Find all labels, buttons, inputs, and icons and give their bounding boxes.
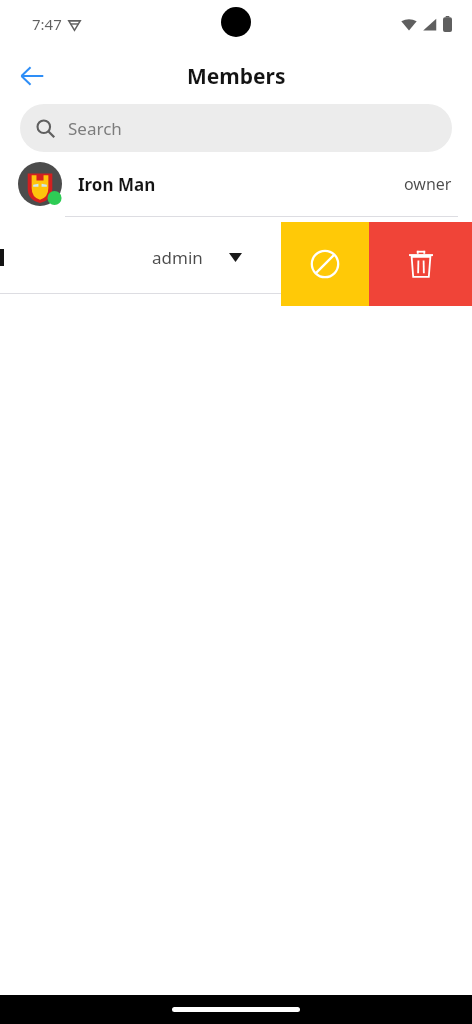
button[interactable]: admin: [152, 246, 242, 269]
button[interactable]: Search: [20, 104, 452, 152]
staticText: 7:47: [32, 14, 62, 34]
button[interactable]: Block member: [281, 222, 369, 306]
staticText: Iron Man: [78, 173, 156, 196]
button[interactable]: Delete member: [369, 222, 472, 306]
button[interactable]: Iron Man: [0, 152, 472, 216]
button[interactable]: Back: [8, 52, 56, 100]
staticText: Search: [68, 117, 122, 140]
staticText: admin: [152, 246, 203, 269]
staticText: owner: [404, 173, 452, 195]
staticText: Members: [187, 62, 286, 91]
button[interactable]: admin: [0, 217, 472, 293]
